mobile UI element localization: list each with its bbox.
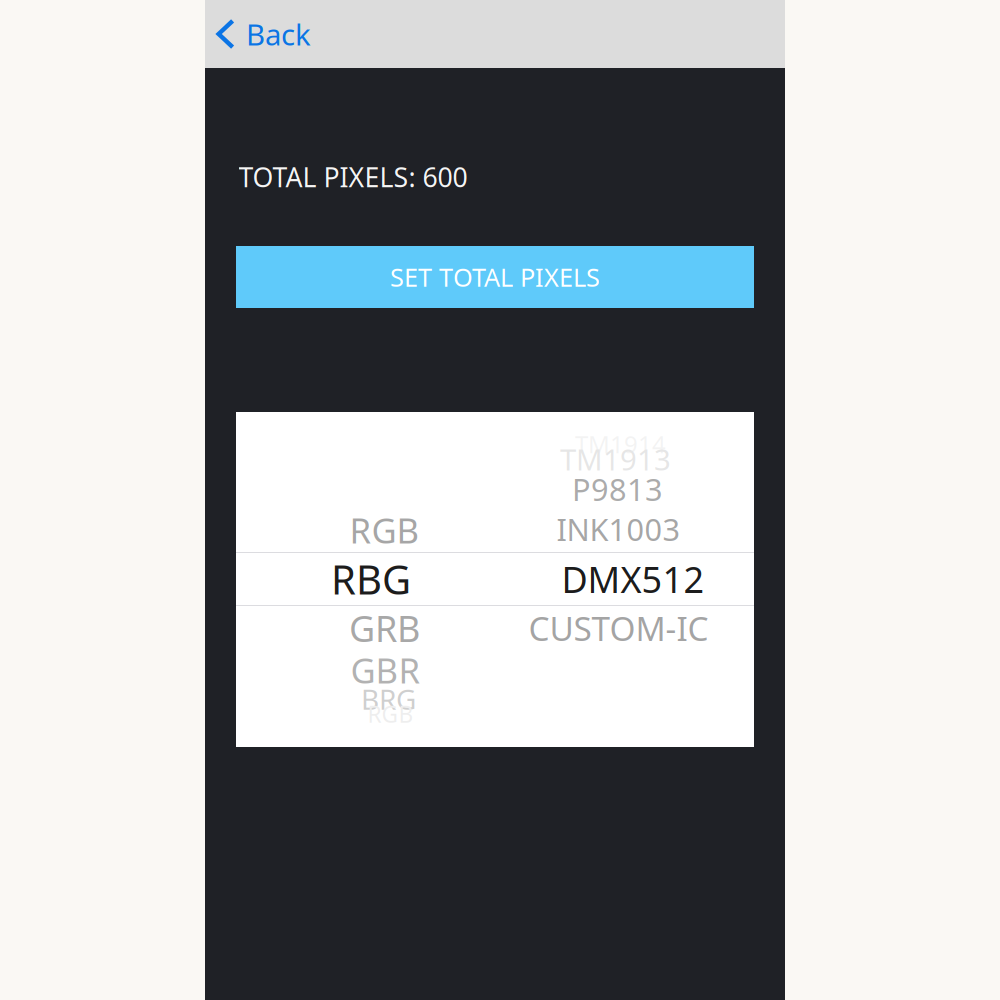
button[interactable]: TM1913 [560,439,671,478]
button[interactable]: RGB [367,699,413,729]
button[interactable]: GBR [350,647,420,693]
staticText: TM1914 [575,428,666,460]
staticText: BRG [361,680,416,718]
button[interactable]: P9813 [572,469,663,509]
button[interactable]: TM1914 [575,428,666,460]
staticText: DMX512 [561,555,704,603]
button[interactable]: Back [205,0,335,68]
staticText: P9813 [572,469,663,509]
staticText: GBR [350,647,420,693]
button[interactable]: DMX512 [561,555,704,603]
button[interactable]: BRG [361,680,416,718]
staticText: TM1913 [560,439,671,478]
staticText: TOTAL PIXELS: 600 [238,159,467,195]
button[interactable]: RBG [331,552,411,605]
button[interactable]: INK1003 [556,509,680,549]
button[interactable]: SET TOTAL PIXELS [236,246,754,308]
staticText: RBG [331,552,411,605]
staticText: RGB [367,699,413,729]
button[interactable]: GRB [349,604,420,652]
staticText: INK1003 [556,509,680,549]
staticText: GRB [349,604,420,652]
staticText: SET TOTAL PIXELS [390,260,600,294]
button[interactable]: RGB [349,507,419,553]
button[interactable]: CUSTOM-IC [528,606,708,650]
staticText: RGB [349,507,419,553]
staticText: Back [246,14,311,53]
staticText: CUSTOM-IC [528,606,708,650]
